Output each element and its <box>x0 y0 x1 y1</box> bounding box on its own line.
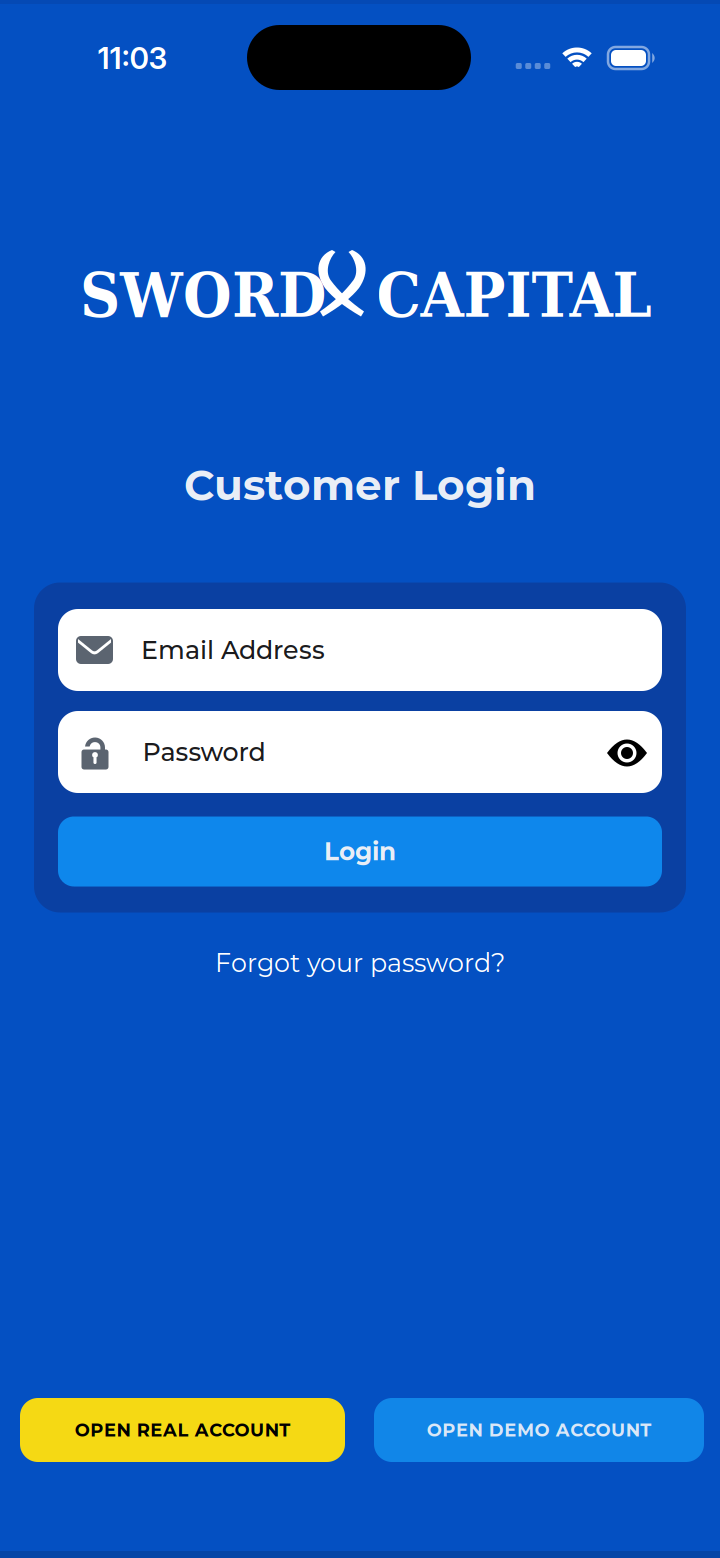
button[interactable]: Password <box>58 711 662 793</box>
staticText: Password <box>142 737 265 767</box>
staticText: Login <box>324 836 396 867</box>
button[interactable]: Forgot your password? <box>215 948 505 978</box>
staticText: Customer Login <box>184 459 536 511</box>
staticText: Forgot your password? <box>215 948 505 978</box>
staticText: CAPITAL <box>376 259 651 331</box>
staticText: SWORD <box>80 259 326 331</box>
button[interactable]: Show password <box>607 739 647 767</box>
staticText: OPEN REAL ACCOUNT <box>75 1419 290 1441</box>
button[interactable]: OPEN REAL ACCOUNT <box>20 1398 345 1462</box>
staticText: OPEN DEMO ACCOUNT <box>427 1419 651 1441</box>
staticText: Email Address <box>141 635 325 665</box>
button[interactable]: OPEN DEMO ACCOUNT <box>374 1398 704 1462</box>
staticText: 11:03 <box>97 40 167 76</box>
button[interactable]: Email Address <box>58 609 662 691</box>
button[interactable]: Login <box>58 816 662 886</box>
